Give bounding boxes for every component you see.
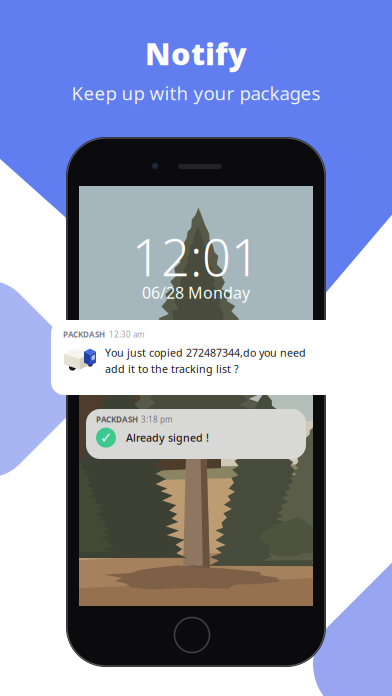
staticText: PACKDASH bbox=[63, 329, 105, 340]
staticText: ✓ bbox=[100, 429, 112, 446]
staticText: add it to the tracking list ? bbox=[105, 362, 239, 376]
staticText: 12:30 am bbox=[109, 329, 144, 340]
staticText: 06/28 Monday bbox=[142, 282, 250, 303]
staticText: PACKDASH bbox=[96, 414, 138, 425]
staticText: You just copied 272487344,do you need bbox=[105, 346, 306, 360]
staticText: Keep up with your packages bbox=[71, 81, 320, 105]
staticText: 3:18 pm bbox=[141, 414, 172, 425]
staticText: Already signed ! bbox=[126, 430, 209, 445]
staticText: 12:01 bbox=[132, 223, 260, 290]
staticText: Notify bbox=[145, 33, 247, 74]
